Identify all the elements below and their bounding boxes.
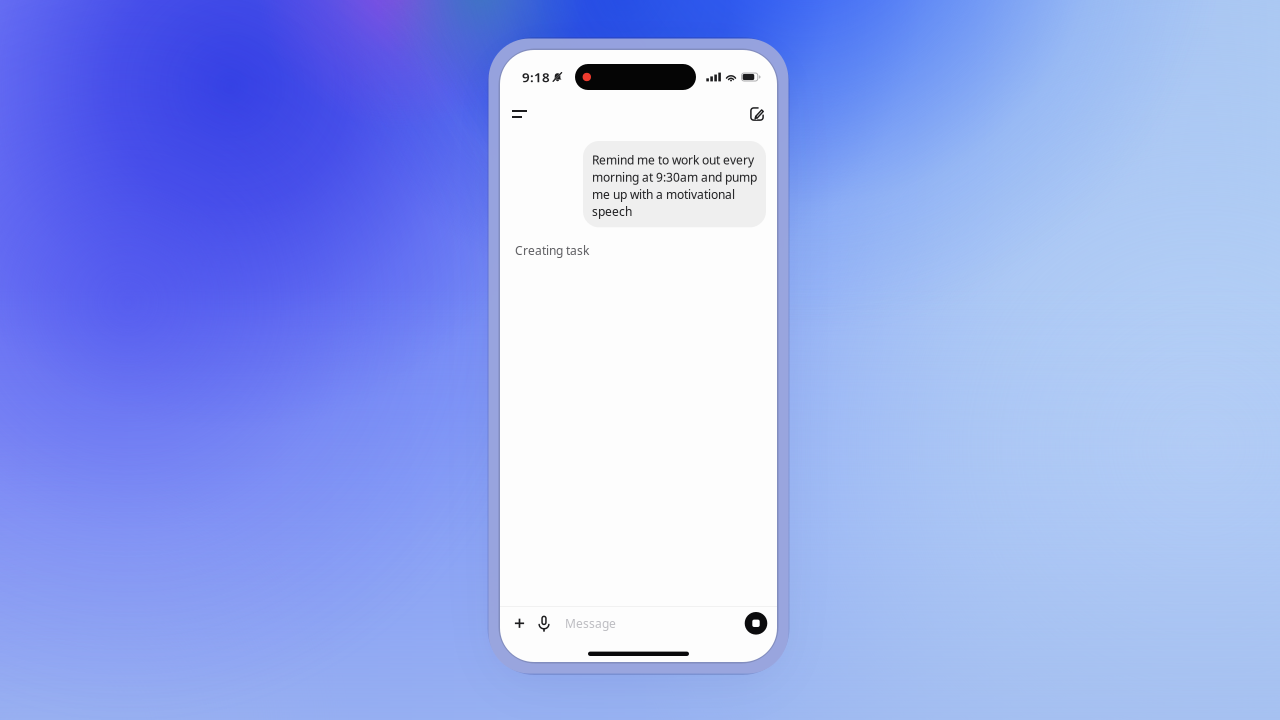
staticText: 9:18 [522,68,550,86]
button[interactable]: Add attachment [508,608,531,638]
button[interactable]: Sidebar [500,94,536,124]
staticText: Creating task [515,242,589,258]
staticText: Remind me to work out every morning at 9… [592,152,757,219]
button[interactable]: New chat [741,94,777,124]
button[interactable]: Message [557,608,650,638]
button[interactable]: Dictate [531,608,557,638]
staticText: Message [565,615,616,631]
button[interactable]: Stop [743,608,769,638]
